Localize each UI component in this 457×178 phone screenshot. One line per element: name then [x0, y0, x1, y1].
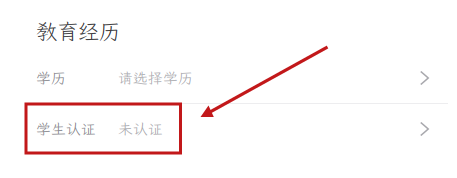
staticText: 未认证 — [118, 119, 163, 139]
button[interactable]: 学历 — [0, 53, 457, 103]
staticText: 教育经历 — [36, 17, 120, 45]
staticText: 学历 — [36, 68, 66, 88]
staticText: 学生认证 — [36, 119, 96, 139]
button[interactable]: 学生认证 — [0, 104, 457, 154]
staticText: 请选择学历 — [118, 68, 193, 88]
